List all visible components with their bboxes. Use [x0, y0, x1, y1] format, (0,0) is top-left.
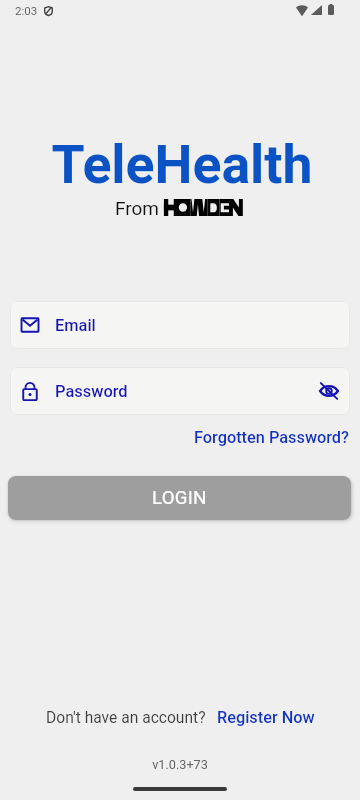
button[interactable]: Forgotten Password? [194, 428, 360, 447]
staticText: From [115, 197, 160, 219]
button[interactable]: LOGIN [8, 476, 351, 520]
button[interactable]: Email [10, 301, 350, 349]
staticText: Register Now [217, 708, 315, 727]
button[interactable]: Register Now [217, 708, 315, 727]
button[interactable]: Show password [308, 370, 350, 412]
staticText: Forgotten Password? [194, 428, 349, 447]
staticText: TeleHealth [2, 133, 360, 196]
staticText: LOGIN [152, 487, 207, 509]
button[interactable]: Password [10, 367, 350, 415]
staticText: 2:03 [15, 4, 38, 17]
staticText: Password [55, 382, 128, 401]
staticText: Don't have an account? [46, 709, 206, 727]
staticText: v1.0.3+73 [0, 757, 360, 772]
staticText: Email [55, 316, 96, 335]
